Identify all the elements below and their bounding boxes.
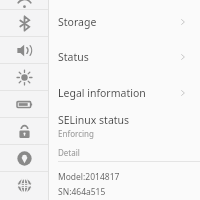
- staticText: SN:464a515: [58, 186, 106, 198]
- button[interactable]: Sound: [0, 37, 49, 63]
- button[interactable]: Legal information: [50, 78, 200, 108]
- button[interactable]: SELinux status: [50, 113, 200, 143]
- staticText: Detail: [58, 147, 80, 158]
- button[interactable]: Security: [0, 118, 49, 144]
- button[interactable]: Storage: [50, 7, 200, 37]
- staticText: Enforcing: [58, 128, 94, 139]
- staticText: Storage: [58, 15, 97, 29]
- button[interactable]: Wi-Fi: [16, 0, 33, 8]
- button[interactable]: Battery: [0, 91, 49, 117]
- button[interactable]: Network: [0, 172, 49, 198]
- button[interactable]: Bluetooth: [0, 10, 49, 36]
- staticText: Legal information: [58, 86, 146, 100]
- staticText: Status: [58, 50, 89, 64]
- button[interactable]: Detail: [50, 145, 200, 159]
- staticText: SELinux status: [58, 113, 130, 127]
- button[interactable]: Location: [0, 145, 49, 171]
- button[interactable]: Brightness: [0, 64, 49, 90]
- staticText: Model:2014817: [58, 171, 120, 183]
- button[interactable]: Status: [50, 42, 200, 72]
